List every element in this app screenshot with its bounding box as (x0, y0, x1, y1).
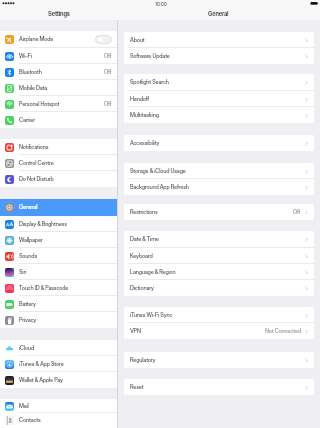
button[interactable]: Handoff (124, 91, 314, 107)
staticText: Wallet & Apple Pay (19, 377, 63, 384)
button[interactable]: Regulatory (124, 352, 314, 368)
button[interactable]: Spotlight Search (124, 74, 314, 91)
button[interactable]: Bluetooth (0, 64, 117, 80)
button[interactable]: Personal Hotspot (0, 96, 117, 112)
staticText: Handoff (130, 96, 149, 103)
staticText: Restrictions (130, 209, 158, 216)
staticText: Siri (19, 269, 27, 276)
button[interactable]: Notifications (0, 139, 117, 155)
button[interactable]: Date & Time (124, 231, 314, 248)
staticText: Mail (19, 403, 29, 410)
button[interactable]: Accessibility (124, 135, 314, 151)
staticText: Off (104, 69, 112, 76)
button[interactable]: Mobile Data (0, 80, 117, 96)
button[interactable]: Carrier (0, 112, 117, 128)
staticText: iTunes & App Store (19, 361, 64, 368)
button[interactable]: Wi-Fi (0, 48, 117, 64)
staticText: Privacy (19, 317, 37, 324)
staticText: General (208, 10, 229, 17)
button[interactable]: Wallpaper (0, 232, 117, 248)
staticText: About (130, 37, 145, 44)
staticText: Touch ID & Passcode (19, 285, 69, 292)
button[interactable]: Mail (0, 399, 117, 413)
button[interactable]: General (0, 199, 117, 216)
staticText: Mobile Data (19, 85, 48, 92)
button[interactable]: Airplane Mode (0, 31, 117, 48)
staticText: Off (293, 209, 301, 216)
staticText: Background App Refresh (130, 184, 189, 191)
button[interactable]: Siri (0, 264, 117, 280)
staticText: Personal Hotspot (19, 101, 60, 108)
staticText: Carrier (19, 117, 35, 124)
staticText: General (19, 204, 38, 211)
button[interactable]: Control Centre (0, 155, 117, 171)
button[interactable]: iCloud (0, 340, 117, 356)
button[interactable]: Display & Brightness (0, 216, 117, 232)
staticText: Notifications (19, 144, 49, 151)
button[interactable]: Do Not Disturb (0, 171, 117, 187)
staticText: Settings (48, 10, 70, 17)
button[interactable]: Reset (124, 379, 314, 395)
staticText: Off (104, 53, 112, 60)
staticText: Not Connected (265, 328, 301, 335)
button[interactable]: iTunes Wi-Fi Sync (124, 307, 314, 323)
button[interactable]: Sounds (0, 248, 117, 264)
staticText: 10:00 (155, 1, 167, 7)
staticText: Keyboard (130, 253, 153, 260)
staticText: Dictionary (130, 285, 154, 292)
button[interactable]: Privacy (0, 312, 117, 328)
button[interactable]: Keyboard (124, 248, 314, 264)
staticText: Spotlight Search (130, 79, 169, 86)
staticText: Date & Time (130, 236, 159, 243)
staticText: Wallpaper (19, 237, 43, 244)
button[interactable]: Storage & iCloud Usage (124, 163, 314, 179)
button[interactable]: VPN (124, 323, 314, 339)
staticText: Sounds (19, 253, 38, 260)
staticText: Language & Region (130, 269, 176, 276)
button[interactable]: Dictionary (124, 280, 314, 296)
staticText: iCloud (19, 345, 35, 352)
staticText: Multitasking (130, 112, 159, 119)
staticText: Do Not Disturb (19, 176, 54, 183)
staticText: Control Centre (19, 160, 54, 167)
staticText: Battery (19, 301, 36, 308)
button[interactable]: Airplane Mode toggle, off (95, 35, 112, 44)
button[interactable]: Multitasking (124, 107, 314, 123)
button[interactable]: iTunes & App Store (0, 356, 117, 372)
staticText: Wi-Fi (19, 53, 32, 60)
staticText: Bluetooth (19, 69, 42, 76)
staticText: iTunes Wi-Fi Sync (130, 312, 173, 319)
staticText: VPN (130, 328, 141, 335)
button[interactable]: About (124, 32, 314, 48)
staticText: Accessibility (130, 140, 160, 147)
staticText: Reset (130, 384, 144, 391)
button[interactable]: Battery (0, 296, 117, 312)
staticText: Contacts (19, 417, 41, 424)
staticText: Storage & iCloud Usage (130, 168, 186, 175)
button[interactable]: Contacts (0, 413, 117, 428)
button[interactable]: Restrictions (124, 204, 314, 220)
button[interactable]: Software Update (124, 48, 314, 64)
button[interactable]: Touch ID & Passcode (0, 280, 117, 296)
staticText: Regulatory (130, 357, 156, 364)
button[interactable]: Wallet & Apple Pay (0, 372, 117, 388)
staticText: Airplane Mode (19, 36, 54, 43)
button[interactable]: Background App Refresh (124, 179, 314, 195)
staticText: Software Update (130, 53, 170, 60)
staticText: Off (104, 101, 112, 108)
button[interactable]: Language & Region (124, 264, 314, 280)
staticText: Display & Brightness (19, 221, 67, 228)
